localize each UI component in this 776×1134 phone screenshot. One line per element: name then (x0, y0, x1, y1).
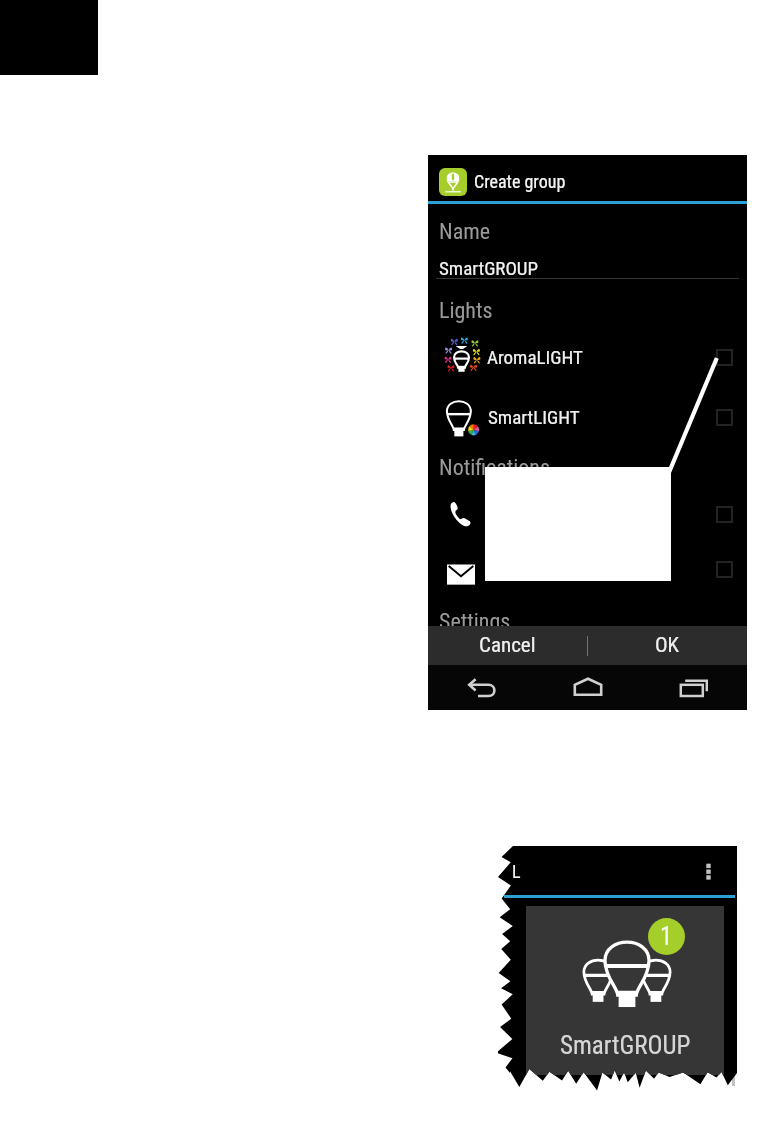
button[interactable]: Create group (428, 155, 747, 202)
staticText: Cancel (479, 633, 536, 658)
button[interactable]: SmartLIGHT (428, 393, 747, 441)
staticText: 1 (660, 922, 673, 951)
button[interactable]: Cancel (428, 626, 587, 665)
button[interactable]: 1 (526, 906, 724, 1075)
staticText: SmartGROUP (439, 257, 539, 279)
staticText: SmartGROUP (560, 1031, 691, 1060)
staticText: OK (655, 633, 680, 658)
button[interactable]: Include SmartLIGHT (711, 404, 738, 431)
staticText: L (512, 861, 521, 882)
button[interactable]: More options (692, 855, 724, 887)
button[interactable]: Home (535, 665, 641, 710)
staticText: AromaLIGHT (487, 346, 583, 368)
button[interactable]: Notify on new message (711, 556, 738, 583)
staticText: SmartLIGHT (488, 406, 580, 428)
button[interactable]: Recent apps (641, 665, 747, 710)
button[interactable]: Phone call notification (428, 493, 747, 541)
button[interactable]: AromaLIGHT (428, 333, 747, 381)
button[interactable]: OK (588, 626, 747, 665)
button[interactable]: Include AromaLIGHT (711, 344, 738, 371)
button[interactable]: Message notification (428, 550, 747, 598)
staticText: Create group (474, 171, 566, 192)
staticText: Settings (439, 609, 511, 635)
staticText: Name (439, 219, 491, 245)
button[interactable]: Notify on incoming call (711, 501, 738, 528)
button[interactable]: Back (428, 665, 535, 710)
staticText: Lights (439, 298, 493, 324)
staticText: Notifications (439, 455, 551, 481)
